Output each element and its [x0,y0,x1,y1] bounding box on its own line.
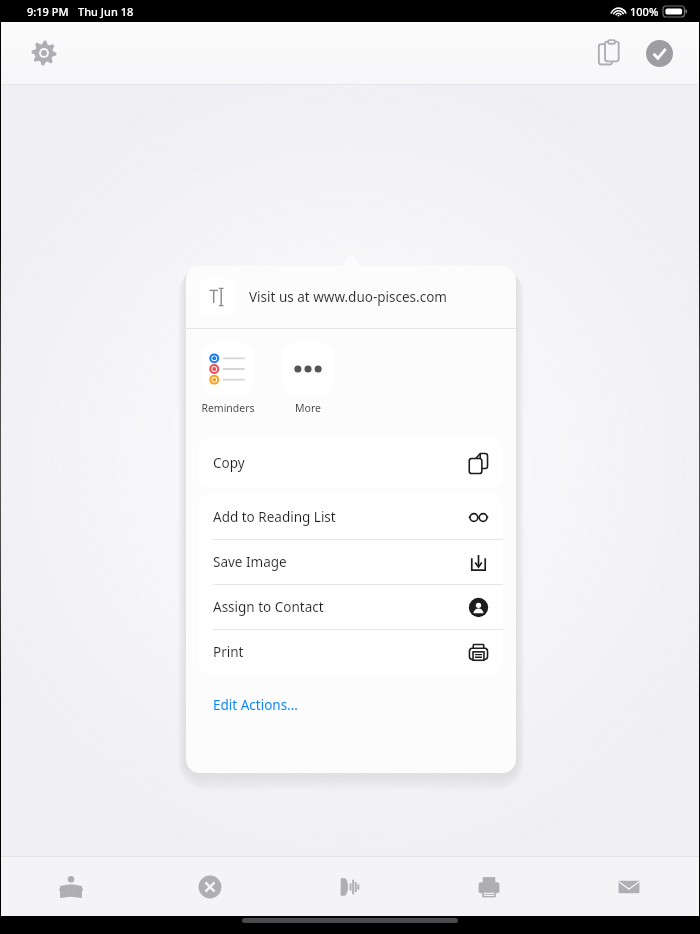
staticText: Assign to Contact [213,598,324,616]
button[interactable]: Close [188,865,232,909]
staticText: Save Image [213,553,287,571]
button[interactable]: Mail [607,865,651,909]
button[interactable]: Reminders [198,343,258,415]
button[interactable]: Edit Actions... [199,690,503,720]
staticText: Visit us at www.duo-pisces.com [249,288,447,306]
button[interactable]: Done [639,33,679,73]
staticText: Reminders [201,401,255,415]
staticText: Edit Actions... [213,696,298,714]
button[interactable]: Print [467,865,511,909]
button[interactable]: Speak [327,865,371,909]
staticText: 9:19 PM [27,4,69,19]
button[interactable]: Settings [25,34,63,72]
staticText: 100% [630,4,659,19]
button[interactable]: Add to Reading List [199,495,503,540]
button[interactable]: Print [199,630,503,674]
staticText: Print [213,643,244,661]
staticText: Add to Reading List [213,508,336,526]
button[interactable]: Save Image [199,540,503,585]
button[interactable]: More [278,343,338,415]
button[interactable]: Clipboard [589,33,629,73]
staticText: Thu Jun 18 [78,4,134,19]
staticText: More [295,401,321,415]
button[interactable]: Copy [199,439,503,487]
button[interactable]: Reader view [49,865,93,909]
button[interactable]: Visit us at www.duo-pisces.com [186,266,516,328]
button[interactable]: Assign to Contact [199,585,503,630]
staticText: Copy [213,454,245,472]
